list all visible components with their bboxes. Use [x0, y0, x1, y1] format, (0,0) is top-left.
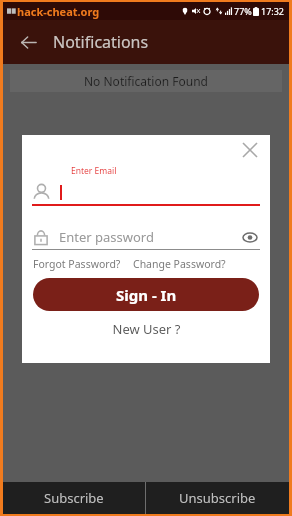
button[interactable]: Forgot Password? [33, 257, 121, 271]
button[interactable]: Show password [240, 227, 260, 247]
button[interactable]: Unsubscribe [146, 482, 289, 514]
staticText: Subscribe [44, 489, 104, 507]
staticText: Sign - In [116, 285, 177, 305]
button[interactable]: Back [11, 25, 45, 59]
staticText: Unsubscribe [179, 489, 256, 507]
button[interactable]: Close [239, 139, 261, 161]
staticText: Change Password? [133, 257, 226, 271]
button[interactable]: Subscribe [3, 482, 145, 514]
staticText: New User ? [112, 320, 181, 338]
staticText: Forgot Password? [33, 257, 121, 271]
staticText: hack-cheat.org [17, 4, 100, 19]
button[interactable]: No Notification Found [10, 70, 282, 92]
button[interactable]: Enter password [32, 225, 260, 249]
staticText: No Notification Found [84, 73, 208, 89]
button[interactable]: Change Password? [133, 257, 226, 271]
button[interactable]: New User ? [112, 320, 181, 338]
staticText: Notifications [53, 31, 149, 53]
staticText: 17:32 [261, 5, 285, 17]
staticText: Enter password [59, 228, 154, 246]
button[interactable]: Sign - In [33, 278, 259, 311]
staticText: 77% [234, 5, 252, 17]
staticText: Enter Email [71, 165, 117, 177]
button[interactable] [32, 180, 260, 204]
